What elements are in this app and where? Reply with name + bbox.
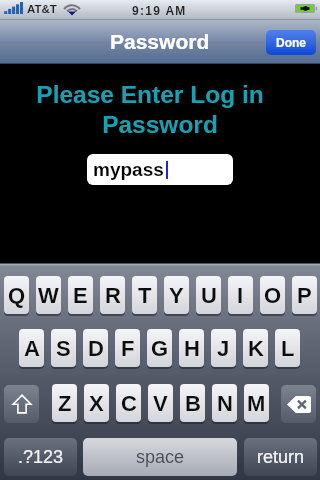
button[interactable]: J <box>211 329 236 369</box>
staticText: 9:19 AM <box>132 4 187 17</box>
button[interactable]: L <box>275 329 300 369</box>
staticText: U <box>201 283 217 308</box>
staticText: F <box>121 336 135 361</box>
button[interactable]: mypass <box>87 154 233 185</box>
button[interactable]: X <box>84 384 109 424</box>
button[interactable]: space <box>83 438 237 476</box>
staticText: Q <box>8 283 26 308</box>
button[interactable]: Backspace <box>281 385 316 423</box>
staticText: return <box>257 447 305 467</box>
staticText: K <box>248 336 264 361</box>
button[interactable]: R <box>100 276 125 316</box>
staticText: Password <box>0 111 320 138</box>
staticText: N <box>217 391 233 416</box>
staticText: mypass <box>93 159 164 180</box>
staticText: J <box>217 336 230 361</box>
staticText: V <box>153 391 168 416</box>
staticText: R <box>105 283 121 308</box>
button[interactable]: F <box>115 329 140 369</box>
button[interactable]: A <box>19 329 44 369</box>
button[interactable]: W <box>36 276 61 316</box>
staticText: M <box>247 391 266 416</box>
button[interactable]: return <box>244 438 317 476</box>
button[interactable]: Shift <box>4 385 39 423</box>
staticText: W <box>38 283 59 308</box>
button[interactable]: K <box>243 329 268 369</box>
button[interactable]: I <box>228 276 253 316</box>
staticText: .?123 <box>18 447 64 467</box>
button[interactable]: S <box>51 329 76 369</box>
button[interactable]: C <box>116 384 141 424</box>
staticText: H <box>184 336 200 361</box>
button[interactable]: V <box>148 384 173 424</box>
staticText: O <box>264 283 282 308</box>
button[interactable]: Z <box>52 384 77 424</box>
button[interactable]: U <box>196 276 221 316</box>
staticText: space <box>136 447 185 467</box>
button[interactable]: E <box>68 276 93 316</box>
button[interactable]: Q <box>4 276 29 316</box>
staticText: Z <box>58 391 72 416</box>
staticText: D <box>88 336 104 361</box>
button[interactable]: N <box>212 384 237 424</box>
staticText: T <box>138 283 152 308</box>
staticText: AT&T <box>27 3 57 16</box>
staticText: Password <box>110 30 210 53</box>
button[interactable]: Y <box>164 276 189 316</box>
button[interactable]: G <box>147 329 172 369</box>
staticText: Y <box>169 283 184 308</box>
button[interactable]: H <box>179 329 204 369</box>
staticText: C <box>121 391 137 416</box>
button[interactable]: M <box>244 384 269 424</box>
staticText: L <box>281 336 295 361</box>
staticText: A <box>24 336 40 361</box>
staticText: B <box>185 391 201 416</box>
button[interactable]: Done <box>266 30 316 55</box>
button[interactable]: P <box>292 276 317 316</box>
staticText: Please Enter Log in <box>0 81 310 108</box>
staticText: E <box>73 283 88 308</box>
button[interactable]: T <box>132 276 157 316</box>
staticText: I <box>237 283 244 308</box>
staticText: X <box>89 391 104 416</box>
button[interactable]: B <box>180 384 205 424</box>
staticText: G <box>151 336 169 361</box>
staticText: S <box>56 336 71 361</box>
button[interactable]: D <box>83 329 108 369</box>
staticText: Done <box>276 36 306 49</box>
staticText: P <box>297 283 312 308</box>
button[interactable]: O <box>260 276 285 316</box>
button[interactable]: .?123 <box>4 438 77 476</box>
